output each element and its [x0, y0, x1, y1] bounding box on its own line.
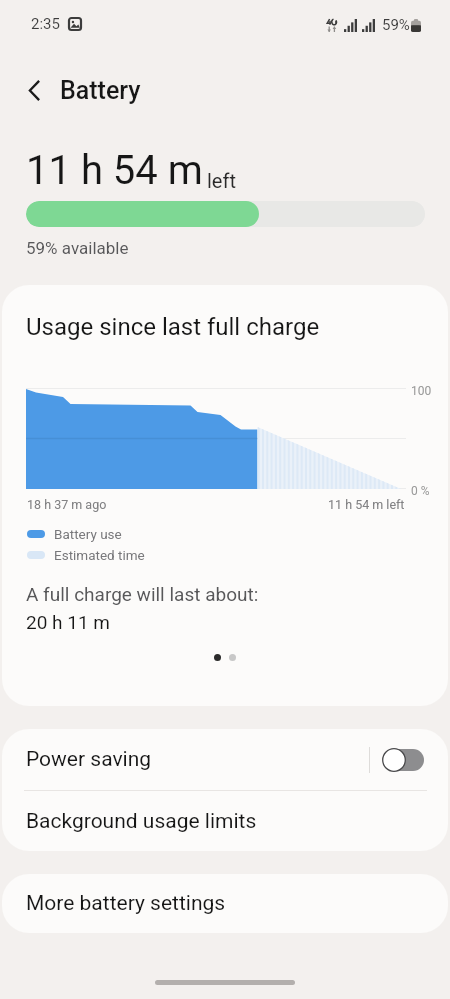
- staticText: 11 h 54 m left: [328, 497, 405, 512]
- button[interactable]: Power saving: [2, 729, 448, 790]
- staticText: 11 h 54 m: [26, 147, 203, 194]
- staticText: 59%: [382, 16, 410, 34]
- button[interactable]: Navigate up: [0, 67, 450, 113]
- staticText: 2:35: [31, 15, 60, 33]
- staticText: A full charge will last about:: [26, 583, 259, 605]
- staticText: Estimated time: [54, 547, 145, 563]
- staticText: Battery: [60, 76, 141, 105]
- other: Navigate up: [20, 76, 48, 104]
- button[interactable]: Background usage limits: [2, 791, 448, 851]
- staticText: Power saving: [26, 747, 152, 772]
- button[interactable]: Power saving toggle, off: [384, 748, 424, 772]
- staticText: Background usage limits: [26, 809, 257, 834]
- button[interactable]: More battery settings: [2, 874, 448, 933]
- staticText: 100: [411, 384, 432, 398]
- staticText: 0 %: [411, 484, 430, 498]
- staticText: 59% available: [26, 238, 129, 258]
- staticText: 20 h 11 m: [26, 611, 110, 633]
- staticText: More battery settings: [26, 891, 226, 916]
- staticText: 18 h 37 m ago: [27, 497, 107, 512]
- staticText: Battery use: [54, 526, 122, 542]
- staticText: Usage since last full charge: [26, 313, 320, 341]
- staticText: left: [207, 169, 236, 192]
